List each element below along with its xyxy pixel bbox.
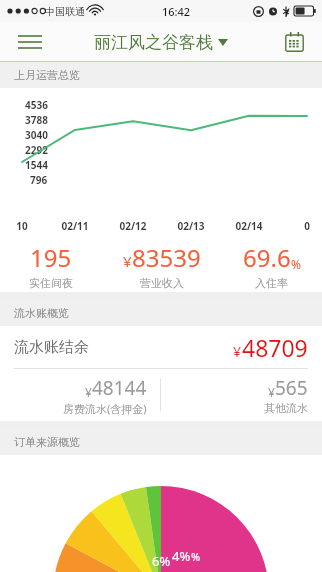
staticText: 流水账概览 [14,306,69,320]
staticText: 4536 [25,98,48,112]
staticText: 48144 [92,375,147,401]
button[interactable]: 丽江风之谷客栈 [94,32,228,53]
staticText: ¥ [268,384,275,400]
staticText: % [291,256,301,272]
staticText: 2292 [25,143,48,157]
staticText: 订单来源概览 [14,435,80,449]
staticText: 其他流水 [264,401,308,415]
staticText: 02/12 [119,219,147,233]
staticText: % [191,549,201,564]
button[interactable]: 69.6 [221,241,322,290]
staticText: 4% [172,547,191,565]
staticText: 房费流水(含押金) [63,401,147,416]
button[interactable]: ¥ [102,241,221,290]
staticText: 565 [275,375,308,401]
staticText: 02/11 [61,219,89,233]
staticText: 48709 [242,332,308,363]
staticText: 69.6 [243,241,291,274]
staticText: 796 [30,173,48,187]
staticText: 流水账结余 [14,338,89,357]
button[interactable]: Calendar [276,24,312,60]
button[interactable]: 195 [0,241,102,290]
staticText: ¥ [233,342,242,361]
staticText: ¥ [123,251,132,271]
staticText: 3040 [25,128,48,142]
staticText: 中国联通 [45,5,85,18]
staticText: 02/13 [177,219,205,233]
staticText: 丽江风之谷客栈 [94,32,213,53]
staticText: 195 [30,241,72,274]
staticText: 83539 [132,241,201,274]
staticText: 6% [152,552,171,570]
staticText: 上月运营总览 [14,68,80,82]
staticText: 营业收入 [140,276,184,290]
staticText: 0 [304,219,310,233]
staticText: 1544 [25,158,48,172]
staticText: 实住间夜 [29,276,73,290]
staticText: 3788 [25,113,48,127]
button[interactable]: Menu [10,22,50,62]
staticText: 16:42 [162,4,191,19]
button[interactable]: ¥ [161,369,322,421]
button[interactable]: 流水账结余 [0,326,322,368]
button[interactable]: ¥ [0,369,161,421]
staticText: 入住率 [255,276,288,290]
staticText: 02/14 [235,219,263,233]
staticText: 10 [16,219,28,233]
staticText: ¥ [85,384,92,400]
